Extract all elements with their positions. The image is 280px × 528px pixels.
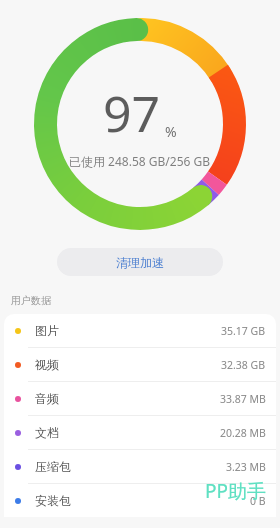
button[interactable]: 视频 bbox=[4, 348, 276, 381]
button[interactable]: 压缩包 bbox=[4, 450, 276, 483]
staticText: 已使用 248.58 GB/256 GB bbox=[69, 153, 211, 169]
button[interactable]: 图片 bbox=[4, 314, 276, 347]
button[interactable]: 文档 bbox=[4, 416, 276, 449]
staticText: 0 B bbox=[250, 494, 266, 508]
staticText: 文档 bbox=[35, 425, 59, 440]
staticText: 用户数据 bbox=[11, 294, 51, 307]
staticText: 视频 bbox=[35, 357, 59, 372]
staticText: 33.87 MB bbox=[220, 392, 266, 406]
staticText: 清理加速 bbox=[116, 255, 164, 270]
staticText: 97 bbox=[103, 79, 161, 147]
button[interactable]: 清理加速 bbox=[57, 248, 223, 276]
staticText: 32.38 GB bbox=[221, 358, 266, 372]
staticText: 图片 bbox=[35, 323, 59, 338]
staticText: 安装包 bbox=[35, 493, 71, 508]
staticText: PP助手 bbox=[205, 478, 266, 504]
button[interactable]: 音频 bbox=[4, 382, 276, 415]
staticText: 20.28 MB bbox=[220, 426, 266, 440]
staticText: % bbox=[165, 122, 177, 141]
other: Storage usage 97 percent bbox=[34, 18, 246, 230]
button[interactable]: 安装包 bbox=[4, 484, 276, 517]
staticText: 3.23 MB bbox=[226, 460, 266, 474]
staticText: 音频 bbox=[35, 391, 59, 406]
staticText: 35.17 GB bbox=[221, 324, 266, 338]
staticText: 压缩包 bbox=[35, 459, 71, 474]
